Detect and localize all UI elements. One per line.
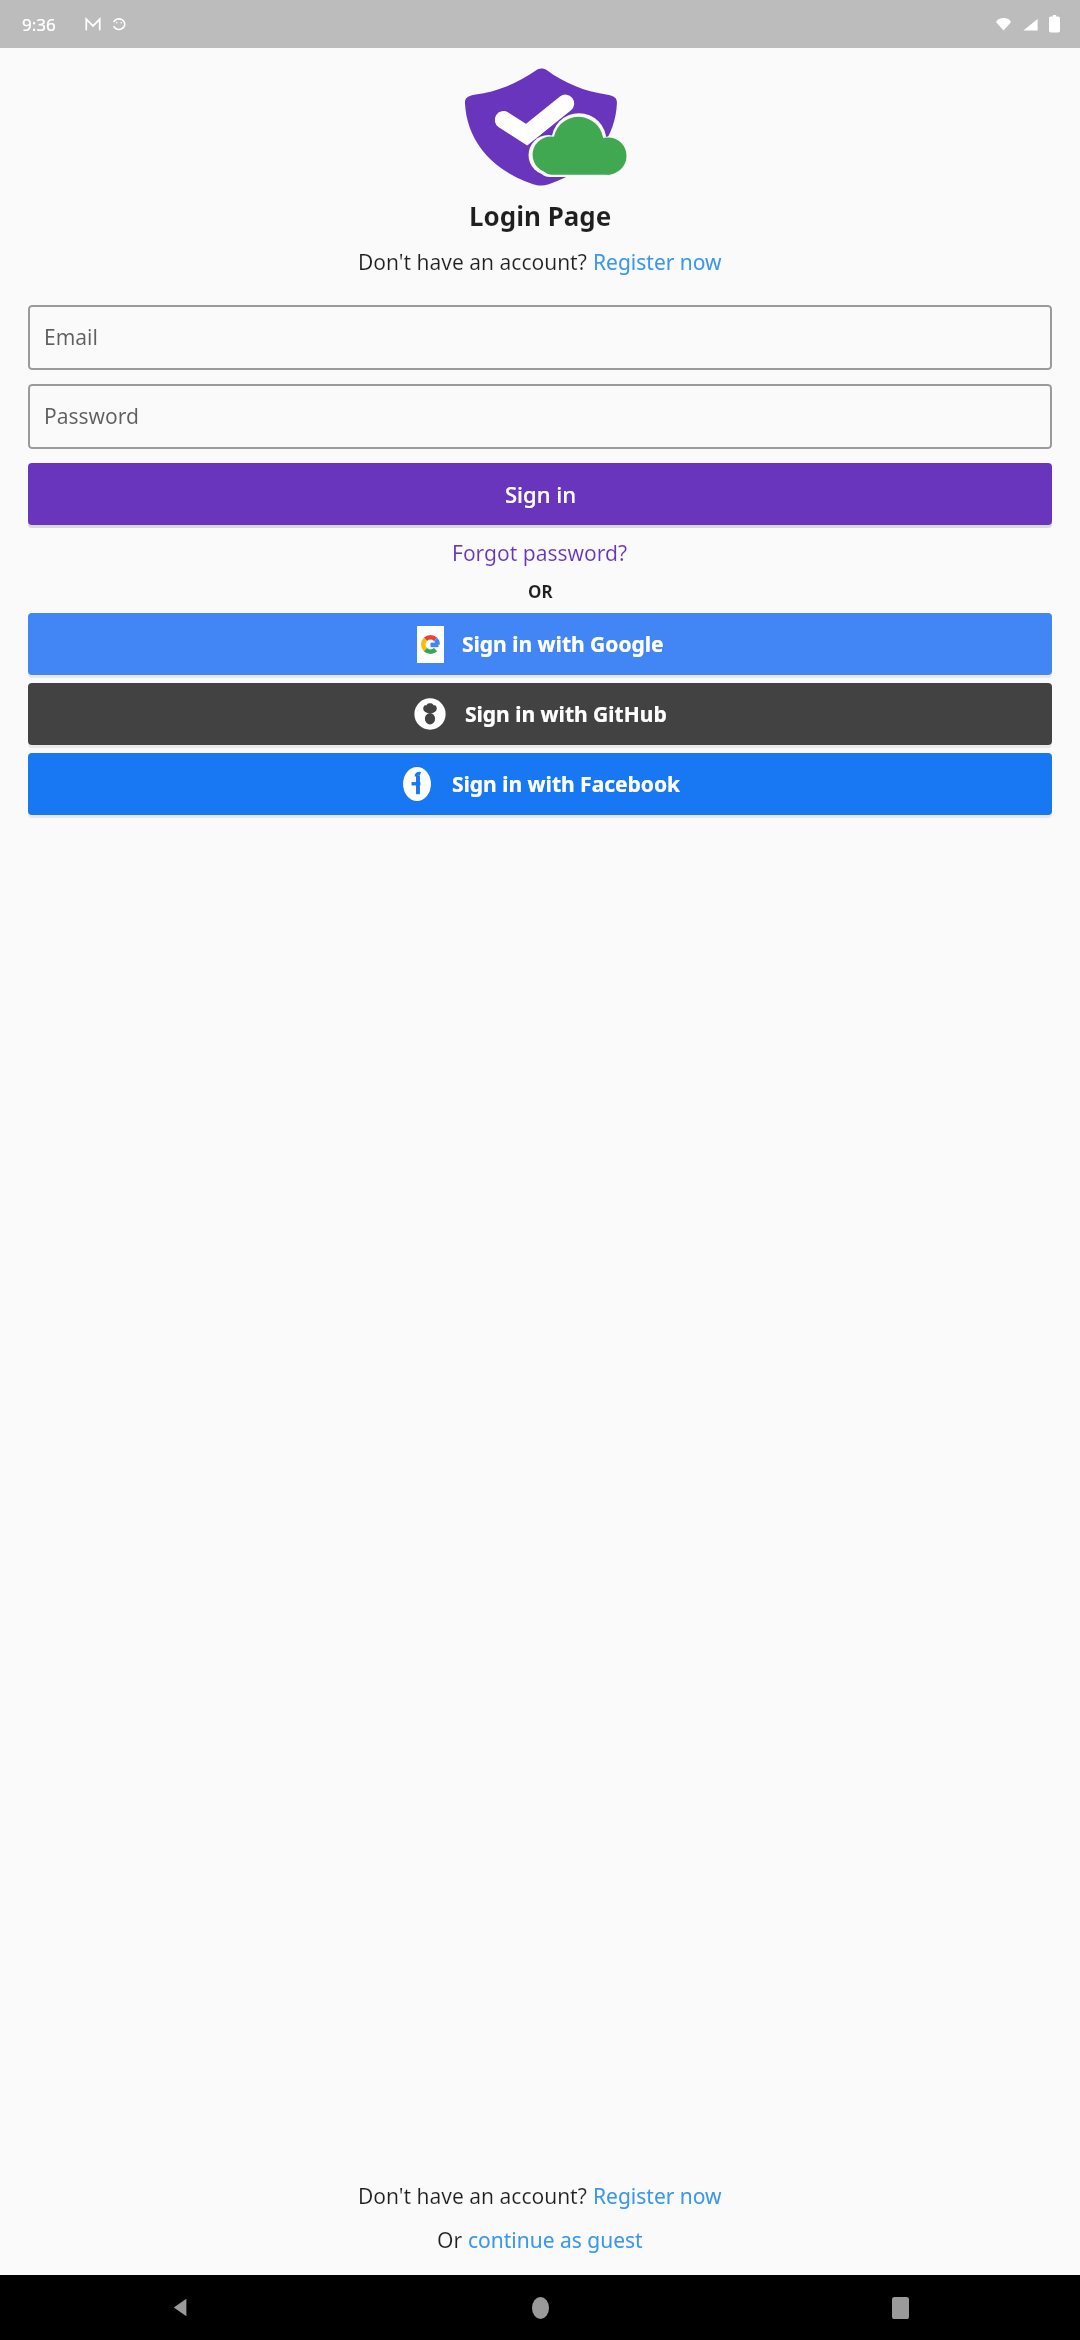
button[interactable]: Password <box>28 384 1052 449</box>
staticText: OR <box>528 580 553 603</box>
staticText: Register now <box>593 2182 722 2211</box>
button[interactable]: continue as guest <box>468 2226 643 2255</box>
staticText: Register now <box>593 248 722 277</box>
staticText: Sign in <box>505 479 576 509</box>
button[interactable]: Recent apps <box>720 2275 1080 2340</box>
button[interactable]: Forgot password? <box>0 539 1080 568</box>
staticText: Login Page <box>469 198 612 233</box>
button[interactable]: Sign in <box>28 463 1052 525</box>
staticText: Sign in with GitHub <box>465 700 667 729</box>
button[interactable]: Back <box>0 2275 360 2340</box>
button[interactable]: Register now <box>593 248 722 277</box>
button[interactable]: Sign in with Google <box>28 613 1052 675</box>
staticText: 9:36 <box>22 13 56 36</box>
button[interactable]: Sign in with GitHub <box>28 683 1052 745</box>
staticText: Don't have an account? <box>358 2182 593 2211</box>
button[interactable]: Sign in with Facebook <box>28 753 1052 815</box>
button[interactable]: Register now <box>593 2182 722 2211</box>
staticText: Password <box>44 402 139 431</box>
staticText: Sign in with Facebook <box>452 770 681 799</box>
staticText: Email <box>44 323 98 352</box>
staticText: Forgot password? <box>452 539 628 568</box>
staticText: Sign in with Google <box>462 630 664 659</box>
staticText: Or <box>437 2226 468 2255</box>
staticText: Don't have an account? <box>358 248 593 277</box>
button[interactable]: Email <box>28 305 1052 370</box>
button[interactable]: Home <box>360 2275 720 2340</box>
staticText: continue as guest <box>468 2226 643 2255</box>
